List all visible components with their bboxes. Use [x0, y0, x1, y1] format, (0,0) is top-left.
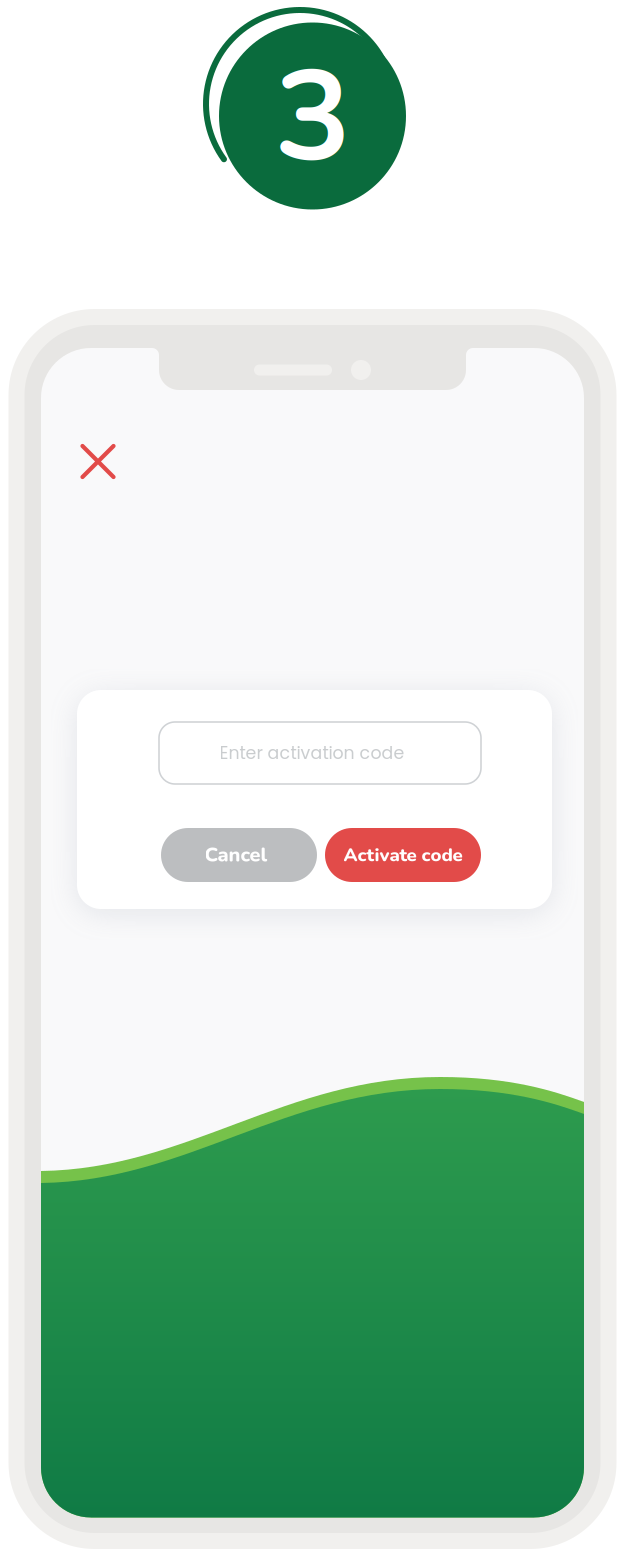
- staticText: Cancel: [204, 841, 267, 869]
- staticText: Activate code: [343, 842, 462, 868]
- button[interactable]: Close: [66, 429, 130, 493]
- button[interactable]: Activate code: [325, 828, 481, 882]
- staticText: 3: [275, 31, 351, 203]
- button[interactable]: Cancel: [161, 828, 317, 882]
- staticText: Enter activation code: [219, 741, 404, 765]
